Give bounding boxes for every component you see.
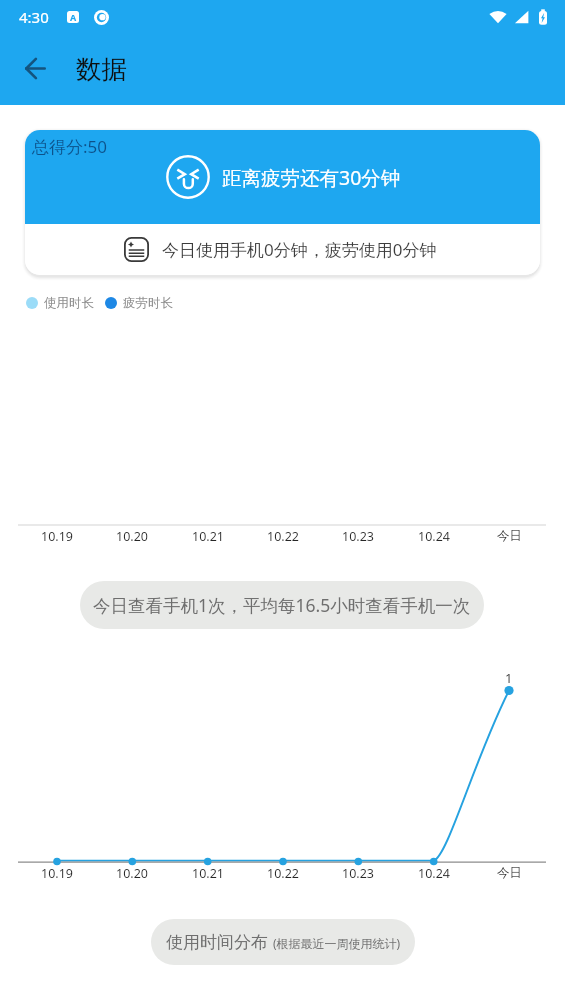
staticText: 今日使用手机0分钟，疲劳使用0分钟: [162, 238, 437, 261]
staticText: (根据最近一周使用统计): [273, 935, 401, 951]
staticText: 使用时间分布: [166, 932, 268, 953]
staticText: 数据: [76, 53, 127, 85]
staticText: 10.23: [342, 528, 374, 545]
button[interactable]: 今日查看手机1次，平均每16.5小时查看手机一次: [80, 581, 484, 629]
button[interactable]: Back: [11, 44, 59, 92]
staticText: 4:30: [19, 7, 49, 27]
staticText: 10.22: [267, 528, 299, 545]
staticText: 今日: [497, 865, 522, 881]
staticText: 10.21: [192, 865, 224, 882]
staticText: 1: [505, 669, 513, 687]
staticText: 10.23: [342, 865, 374, 882]
staticText: 使用时长: [44, 295, 94, 311]
staticText: 距离疲劳还有30分钟: [222, 164, 401, 191]
staticText: 10.24: [418, 865, 450, 882]
staticText: 总得分:50: [32, 135, 108, 158]
staticText: 10.22: [267, 865, 299, 882]
button[interactable]: 使用时间分布: [151, 919, 415, 965]
staticText: 10.21: [192, 528, 224, 545]
staticText: 今日: [497, 528, 522, 544]
staticText: 今日查看手机1次，平均每16.5小时查看手机一次: [93, 593, 471, 617]
staticText: 10.20: [116, 528, 148, 545]
staticText: A: [70, 11, 77, 23]
staticText: 10.19: [41, 865, 73, 882]
staticText: 10.24: [418, 528, 450, 545]
staticText: 10.20: [116, 865, 148, 882]
staticText: 疲劳时长: [123, 295, 173, 311]
staticText: 10.19: [41, 528, 73, 545]
